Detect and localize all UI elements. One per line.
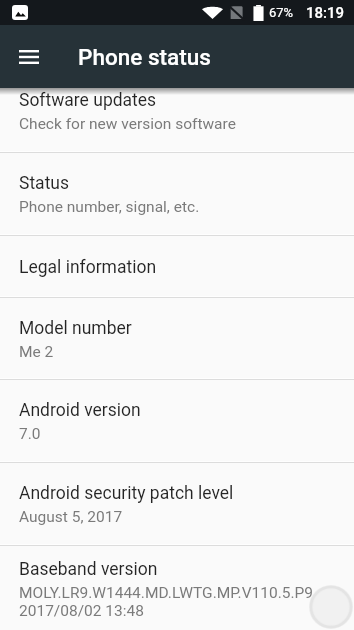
staticText: Software updates bbox=[19, 90, 157, 111]
staticText: 2017/08/02 13:48 bbox=[19, 602, 144, 620]
staticText: Legal information bbox=[19, 257, 157, 278]
button[interactable]: Open navigation menu bbox=[0, 25, 58, 88]
staticText: 67% bbox=[269, 5, 294, 20]
staticText: MOLY.LR9.W1444.MD.LWTG.MP.V110.5.P9, bbox=[19, 584, 317, 602]
staticText: Check for new version software bbox=[19, 115, 236, 133]
button[interactable]: Model number bbox=[0, 298, 354, 378]
staticText: 7.0 bbox=[19, 425, 41, 443]
button[interactable]: Legal information bbox=[0, 236, 354, 296]
staticText: Android security patch level bbox=[19, 483, 234, 504]
button[interactable]: Android security patch level bbox=[0, 463, 354, 544]
staticText: Model number bbox=[19, 318, 132, 339]
button[interactable]: Status bbox=[0, 153, 354, 234]
staticText: Phone status bbox=[78, 44, 211, 70]
staticText: Baseband version bbox=[19, 559, 158, 580]
button[interactable]: Software updates bbox=[0, 70, 354, 151]
button[interactable]: Android version bbox=[0, 380, 354, 461]
staticText: August 5, 2017 bbox=[19, 508, 123, 526]
button[interactable]: Baseband version bbox=[0, 546, 354, 630]
button[interactable]: Assistive touch bbox=[309, 585, 353, 629]
staticText: Phone number, signal, etc. bbox=[19, 198, 200, 216]
staticText: Status bbox=[19, 173, 70, 194]
staticText: 18:19 bbox=[306, 4, 345, 22]
staticText: Android version bbox=[19, 400, 141, 421]
staticText: Me 2 bbox=[19, 343, 54, 361]
